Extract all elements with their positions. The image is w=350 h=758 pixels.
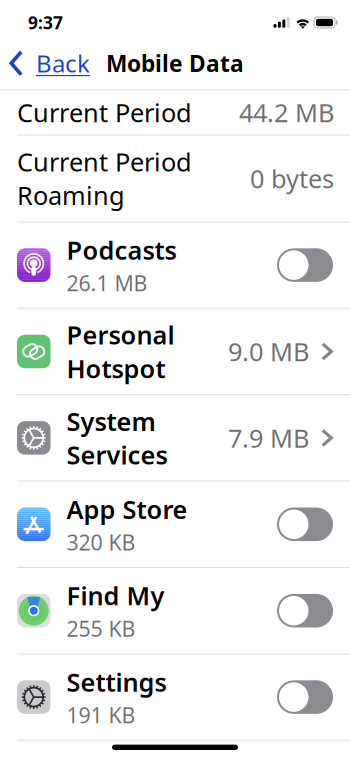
staticText: Personal Hotspot	[66, 318, 174, 385]
staticText: Podcasts	[66, 233, 176, 267]
staticText: App Store	[66, 492, 187, 526]
button[interactable]: Cellular data toggle	[277, 594, 333, 627]
button[interactable]: Podcasts	[0, 222, 350, 308]
button[interactable]: Find My	[0, 568, 350, 653]
button[interactable]: Cellular data toggle	[277, 680, 333, 714]
staticText: 191 KB	[66, 701, 135, 729]
button[interactable]: Cellular data toggle	[277, 248, 333, 282]
staticText: 7.9 MB	[228, 421, 309, 455]
staticText: Current Period	[17, 96, 192, 129]
button[interactable]: Personal Hotspot	[0, 309, 350, 394]
staticText: 44.2 MB	[239, 96, 334, 129]
staticText: 9.0 MB	[228, 335, 309, 368]
staticText: 0 bytes	[250, 162, 334, 195]
staticText: Mobile Data	[106, 48, 244, 78]
staticText: 320 KB	[66, 528, 135, 556]
staticText: System Services	[66, 404, 167, 472]
staticText: Find My	[66, 579, 164, 612]
staticText: 255 KB	[66, 614, 135, 643]
button[interactable]: App Store	[0, 482, 350, 567]
staticText: 26.1 MB	[66, 269, 147, 297]
button[interactable]: Settings	[0, 654, 350, 740]
button[interactable]: Back	[0, 41, 94, 85]
staticText: Back	[36, 47, 90, 79]
staticText: Current Period Roaming	[17, 145, 192, 212]
button[interactable]: System Services	[0, 395, 350, 481]
staticText: 9:37	[28, 11, 63, 34]
staticText: Settings	[66, 665, 166, 699]
button[interactable]: Cellular data toggle	[277, 508, 333, 541]
